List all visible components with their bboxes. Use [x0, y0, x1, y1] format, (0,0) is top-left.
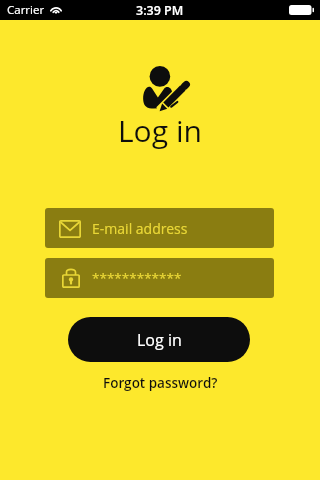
staticText: 3:39 PM: [136, 2, 184, 19]
button[interactable]: Forgot password?: [95, 370, 226, 396]
other: Sign up: [142, 65, 190, 112]
staticText: ************: [92, 269, 182, 287]
other: Battery: [289, 5, 314, 15]
button[interactable]: ************: [45, 258, 274, 298]
staticText: E-mail address: [92, 219, 188, 238]
staticText: Forgot password?: [103, 374, 218, 392]
staticText: Carrier: [7, 2, 45, 18]
button[interactable]: E-mail address: [45, 208, 274, 248]
button[interactable]: Log in: [68, 317, 250, 362]
staticText: Log in: [137, 329, 182, 351]
staticText: Log in: [118, 110, 202, 151]
other: Wi-Fi: [51, 5, 61, 14]
